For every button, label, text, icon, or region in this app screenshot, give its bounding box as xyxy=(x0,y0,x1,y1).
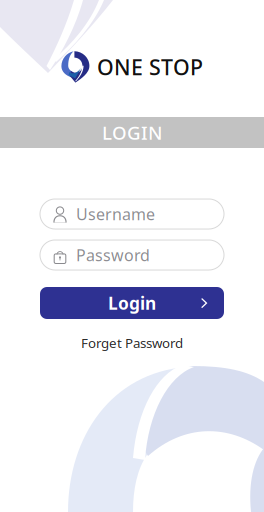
button[interactable]: Login xyxy=(40,287,224,319)
staticText: Login xyxy=(108,291,156,314)
staticText: Forget Password xyxy=(81,334,183,352)
staticText: Username xyxy=(76,203,155,225)
button[interactable]: Forget Password xyxy=(71,330,193,356)
staticText: LOGIN xyxy=(102,120,162,145)
staticText: Password xyxy=(76,244,150,266)
staticText: ONE STOP xyxy=(97,53,203,81)
